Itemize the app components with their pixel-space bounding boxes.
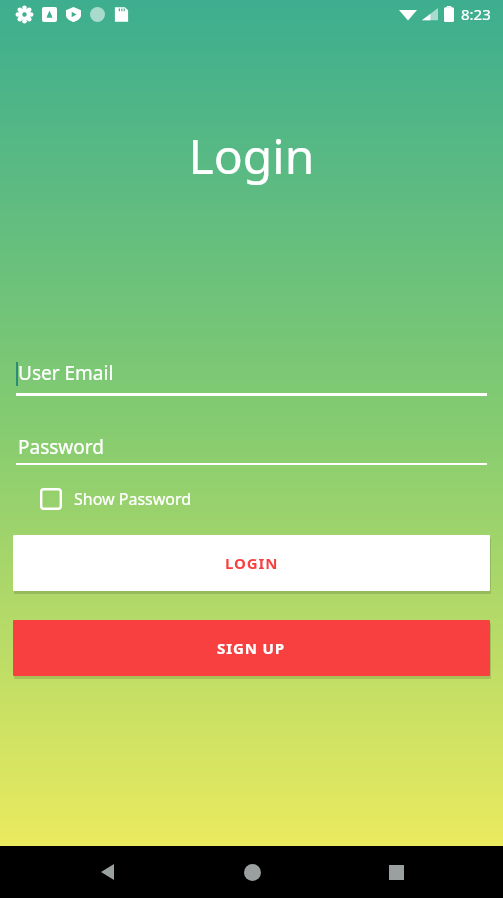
button[interactable]: Back — [90, 855, 124, 889]
button[interactable]: Recent apps — [379, 855, 413, 889]
button[interactable]: User Email — [16, 360, 487, 396]
staticText: Password — [18, 434, 104, 460]
staticText: Login — [0, 123, 503, 188]
staticText: LOGIN — [225, 553, 279, 573]
button[interactable]: Home — [235, 855, 269, 889]
button[interactable]: Password — [16, 429, 487, 465]
staticText: SIGN UP — [217, 638, 286, 658]
button[interactable]: Show Password — [40, 481, 192, 517]
staticText: User Email — [18, 360, 114, 386]
staticText: Show Password — [74, 488, 192, 510]
button[interactable]: LOGIN — [13, 535, 490, 591]
staticText: 8:23 — [461, 4, 491, 24]
button[interactable]: SIGN UP — [13, 620, 490, 676]
